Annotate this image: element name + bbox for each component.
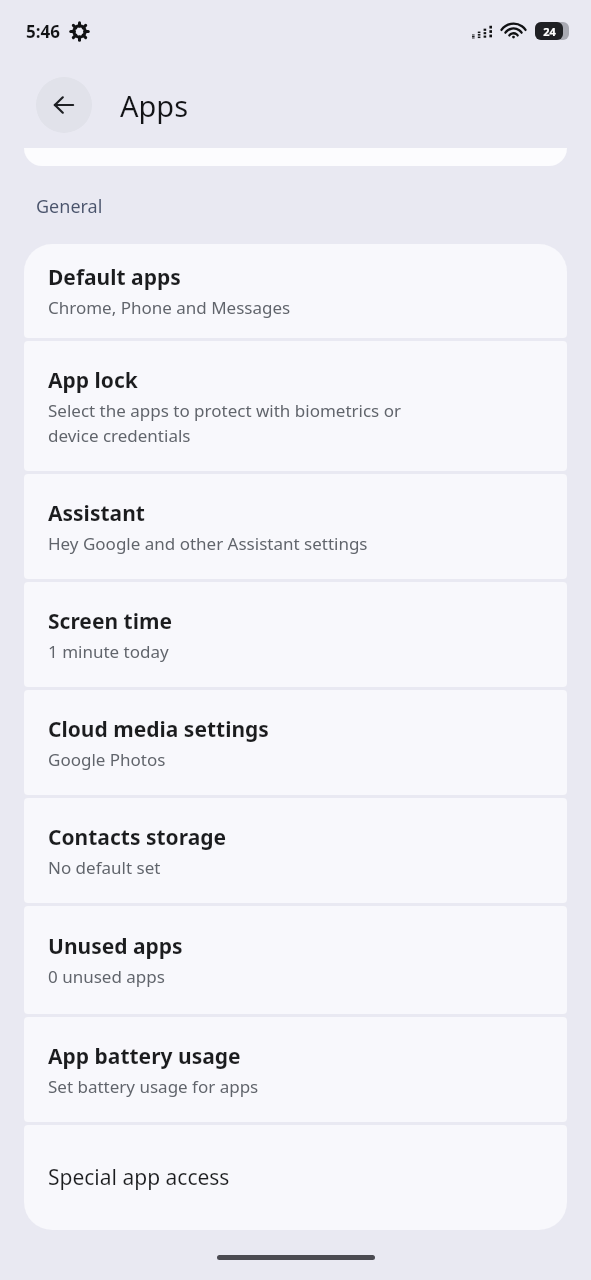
button[interactable]: App battery usage: [24, 1017, 567, 1122]
button[interactable]: Assistant: [24, 474, 567, 579]
staticText: 24: [543, 24, 556, 39]
button[interactable]: App lock: [24, 341, 567, 471]
staticText: App lock: [48, 366, 138, 395]
button[interactable]: Back: [36, 77, 92, 133]
staticText: Hey Google and other Assistant settings: [48, 532, 368, 555]
button[interactable]: Special app access: [24, 1125, 567, 1230]
staticText: Screen time: [48, 607, 172, 636]
staticText: No default set: [48, 856, 161, 879]
staticText: Contacts storage: [48, 823, 227, 852]
staticText: 0 unused apps: [48, 965, 165, 988]
staticText: App battery usage: [48, 1042, 241, 1071]
staticText: 5:46: [26, 20, 60, 43]
staticText: Set battery usage for apps: [48, 1075, 259, 1098]
button[interactable]: Unused apps: [24, 906, 567, 1014]
staticText: Cloud media settings: [48, 715, 269, 744]
staticText: General: [36, 194, 103, 219]
staticText: Apps: [120, 86, 189, 125]
button[interactable]: Screen time: [24, 582, 567, 687]
button[interactable]: Contacts storage: [24, 798, 567, 903]
button[interactable]: Default apps: [24, 244, 567, 338]
staticText: Google Photos: [48, 748, 166, 771]
staticText: Unused apps: [48, 932, 183, 961]
staticText: Special app access: [48, 1163, 230, 1192]
staticText: device credentials: [48, 424, 191, 447]
button[interactable]: Cloud media settings: [24, 690, 567, 795]
staticText: Select the apps to protect with biometri…: [48, 399, 401, 422]
staticText: Default apps: [48, 263, 181, 292]
staticText: Chrome, Phone and Messages: [48, 296, 291, 319]
staticText: 1 minute today: [48, 640, 169, 663]
staticText: Assistant: [48, 499, 145, 528]
